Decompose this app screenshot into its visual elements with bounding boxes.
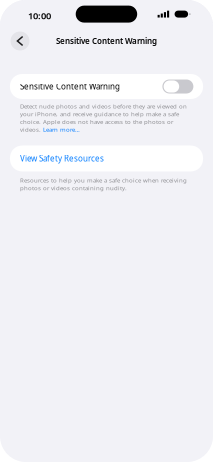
staticText: Learn more… <box>43 125 80 133</box>
staticText: 10:00 <box>28 9 51 22</box>
staticText: choice. Apple does not have access to th… <box>20 117 173 126</box>
staticText: your iPhone, and receive guidance to hel… <box>20 110 179 118</box>
staticText: photos or videos containing nudity. <box>20 184 127 192</box>
staticText: videos. <box>20 125 43 133</box>
staticText: View Safety Resources <box>20 153 104 164</box>
staticText: Resources to help you make a safe choice… <box>20 176 187 184</box>
staticText: Sensitive Content Warning <box>56 36 157 46</box>
button[interactable]: Back <box>10 31 29 50</box>
staticText: Detect nude photos and videos before the… <box>20 102 187 110</box>
button[interactable]: Sensitive Content Warning <box>10 74 203 99</box>
button[interactable]: View Safety Resources <box>10 145 203 171</box>
staticText: Sensitive Content Warning <box>20 81 120 92</box>
